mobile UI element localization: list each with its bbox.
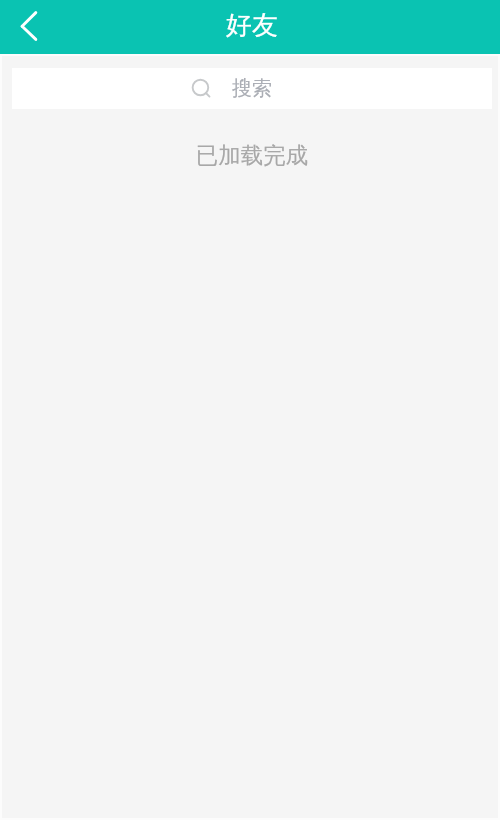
staticText: 好友 <box>226 9 278 42</box>
button[interactable]: 搜索 <box>12 68 492 109</box>
button[interactable]: Back <box>0 0 56 54</box>
staticText: 已加载完成 <box>4 141 500 169</box>
staticText: 搜索 <box>232 76 272 101</box>
